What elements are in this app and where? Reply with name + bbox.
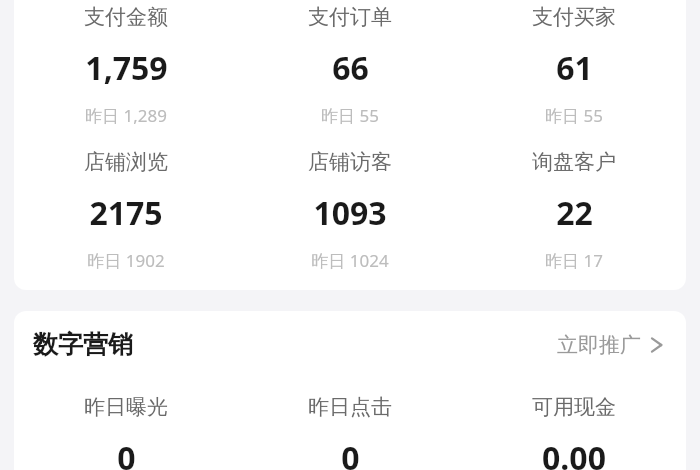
staticText: 61	[556, 46, 593, 90]
button[interactable]: 支付金额	[14, 4, 238, 127]
staticText: 0.00	[542, 436, 606, 470]
button[interactable]: 可用现金	[462, 394, 686, 470]
staticText: 昨日 17	[545, 249, 603, 272]
staticText: 昨日曝光	[84, 394, 168, 420]
button[interactable]: 店铺访客	[238, 149, 462, 272]
staticText: 店铺访客	[308, 149, 392, 175]
staticText: 昨日点击	[308, 394, 392, 420]
button[interactable]: 支付买家	[462, 4, 686, 127]
staticText: 昨日 55	[545, 104, 603, 127]
button[interactable]: 支付订单	[238, 4, 462, 127]
staticText: 66	[332, 46, 369, 90]
staticText: 0	[341, 436, 360, 470]
staticText: 昨日 1024	[311, 249, 389, 272]
other: 立即推广	[648, 334, 666, 356]
button[interactable]: 立即推广	[557, 332, 666, 358]
button[interactable]: 询盘客户	[462, 149, 686, 272]
staticText: 支付订单	[308, 4, 392, 30]
button[interactable]: 昨日曝光	[14, 394, 238, 470]
button[interactable]: 店铺浏览	[14, 149, 238, 272]
staticText: 支付买家	[532, 4, 616, 30]
staticText: 店铺浏览	[84, 149, 168, 175]
button[interactable]: 昨日点击	[238, 394, 462, 470]
staticText: 0	[117, 436, 136, 470]
staticText: 昨日 55	[321, 104, 379, 127]
staticText: 支付金额	[84, 4, 168, 30]
staticText: 昨日 1902	[87, 249, 165, 272]
staticText: 2175	[89, 191, 163, 235]
staticText: 数字营销	[33, 329, 133, 360]
staticText: 昨日 1,289	[85, 104, 167, 127]
staticText: 立即推广	[557, 332, 641, 358]
staticText: 1,759	[85, 46, 168, 90]
staticText: 询盘客户	[532, 149, 616, 175]
staticText: 可用现金	[532, 394, 616, 420]
staticText: 22	[556, 191, 593, 235]
staticText: 1093	[313, 191, 387, 235]
